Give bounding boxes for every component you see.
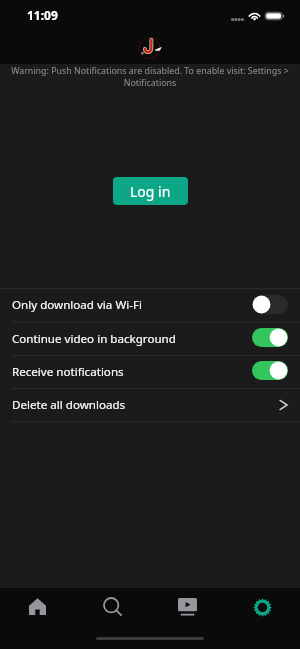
button[interactable]: Search	[75, 588, 150, 649]
staticText: 11:09	[27, 7, 58, 23]
button[interactable]: Receive notifications	[0, 355, 300, 388]
button[interactable]: Continue video in background	[0, 322, 300, 355]
button[interactable]	[252, 361, 288, 380]
button[interactable]: Only download via Wi-Fi	[0, 288, 300, 322]
button[interactable]: Log in	[113, 177, 188, 205]
button[interactable]: Home	[0, 588, 75, 649]
other: Logo	[137, 36, 162, 60]
button[interactable]	[252, 295, 288, 314]
staticText: Only download via Wi-Fi	[12, 297, 142, 313]
button[interactable]: Delete all downloads	[0, 388, 300, 422]
staticText: Receive notifications	[12, 364, 124, 380]
staticText: Warning: Push Notifications are disabled…	[11, 65, 289, 89]
staticText: Continue video in background	[12, 331, 176, 347]
staticText: Delete all downloads	[12, 397, 126, 413]
staticText: Log in	[130, 182, 171, 201]
button[interactable]: Settings	[225, 588, 300, 649]
other: Open	[279, 399, 288, 411]
button[interactable]	[252, 328, 288, 347]
button[interactable]: Videos	[150, 588, 225, 649]
